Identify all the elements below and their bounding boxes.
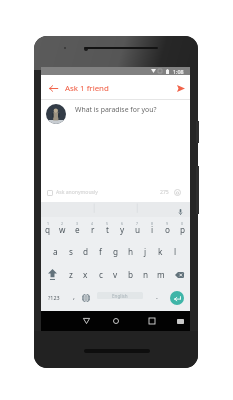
staticText: 8 [151,221,154,226]
staticText: h [128,246,134,257]
button[interactable]: Send [172,79,190,97]
button[interactable]: Shift [41,263,63,286]
button[interactable]: x [78,263,93,286]
button[interactable]: Mention a friend [173,188,182,197]
staticText: Ask anonymously [56,189,98,196]
button[interactable]: Change language [78,286,93,309]
staticText: b [128,269,134,280]
staticText: l [174,246,177,257]
button[interactable]: l [168,240,183,263]
staticText: x [83,269,88,280]
staticText: i [151,224,154,235]
button[interactable]: . [150,286,164,309]
staticText: k [158,246,163,257]
staticText: 7 [136,221,139,226]
button[interactable]: 3 [70,217,85,240]
staticText: n [143,269,149,280]
staticText: Ask 1 friend [65,83,109,94]
staticText: z [69,269,73,280]
button[interactable]: English [97,292,143,299]
button[interactable]: Ask anonymously [47,189,98,196]
button[interactable]: Backspace [168,263,190,286]
staticText: 0 [181,221,184,226]
button[interactable]: g [108,240,123,263]
button[interactable]: d [78,240,93,263]
staticText: y [120,224,125,235]
staticText: 4 [91,221,94,226]
button[interactable]: 1 [41,217,55,240]
staticText: m [157,269,165,280]
staticText: 9 [166,221,169,226]
staticText: v [113,269,118,280]
button[interactable]: j [138,240,153,263]
staticText: 275 [160,189,169,196]
button[interactable]: 9 [160,217,175,240]
staticText: , [73,292,75,302]
button[interactable]: Back [44,79,62,97]
staticText: s [69,246,73,257]
button[interactable]: Send message [164,286,189,309]
button[interactable]: v [108,263,123,286]
staticText: p [180,224,186,235]
staticText: g [113,246,119,257]
staticText: j [144,246,147,257]
button[interactable]: 2 [55,217,70,240]
staticText: u [135,224,141,235]
button[interactable]: Voice input [176,207,185,216]
button[interactable]: 8 [145,217,160,240]
button[interactable]: f [93,240,108,263]
button[interactable]: n [138,263,153,286]
staticText: o [165,224,170,235]
staticText: 5 [106,221,109,226]
staticText: 3 [76,221,79,226]
button[interactable]: Hide keyboard [173,311,188,331]
staticText: . [156,292,158,302]
button[interactable]: Back [79,311,94,331]
button[interactable]: Recent apps [144,311,159,331]
staticText: c [99,269,103,280]
button[interactable]: ?123 [43,286,65,309]
button[interactable]: k [153,240,168,263]
button[interactable]: 0 [175,217,190,240]
staticText: q [45,224,51,235]
button[interactable]: 4 [85,217,100,240]
staticText: 6 [121,221,124,226]
button[interactable]: 6 [115,217,130,240]
staticText: d [83,246,89,257]
staticText: e [75,224,80,235]
button[interactable]: 7 [130,217,145,240]
button[interactable]: c [93,263,108,286]
button[interactable]: h [123,240,138,263]
button[interactable]: 5 [100,217,115,240]
staticText: w [59,224,66,235]
staticText: ?123 [48,294,60,301]
staticText: f [99,246,102,257]
staticText: 1:08 [173,68,184,75]
button[interactable]: m [153,263,168,286]
button[interactable]: Home [108,311,123,331]
button[interactable]: b [123,263,138,286]
staticText: a [53,246,58,257]
staticText: t [106,224,109,235]
button[interactable]: a [48,240,63,263]
staticText: English [112,293,128,299]
button[interactable]: , [67,286,81,309]
button[interactable]: s [63,240,78,263]
staticText: 2 [61,221,64,226]
staticText: What is paradise for you? [75,105,157,114]
staticText: r [91,224,95,235]
staticText: 1 [47,221,50,226]
button[interactable]: z [63,263,78,286]
